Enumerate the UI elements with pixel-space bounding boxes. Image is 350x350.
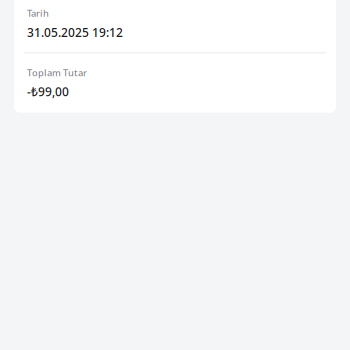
staticText: Tarih [27, 7, 49, 19]
staticText: Toplam Tutar [27, 66, 87, 79]
staticText: 31.05.2025 19:12 [27, 24, 123, 40]
staticText: -₺99,00 [27, 84, 69, 100]
